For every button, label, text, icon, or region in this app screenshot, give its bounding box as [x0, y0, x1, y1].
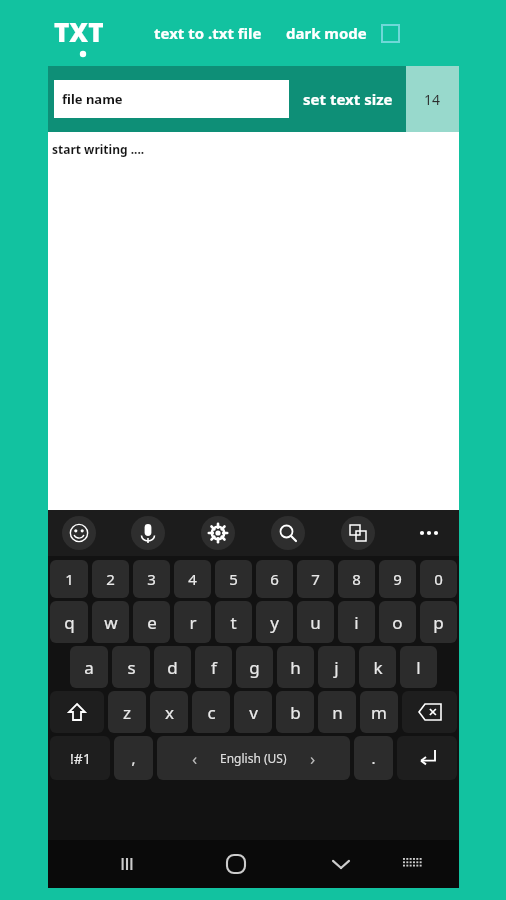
- button[interactable]: n: [318, 691, 356, 733]
- button[interactable]: e: [133, 601, 170, 643]
- button[interactable]: w: [92, 601, 129, 643]
- button[interactable]: Emoji: [62, 516, 96, 550]
- button[interactable]: r: [174, 601, 211, 643]
- staticText: h: [290, 656, 301, 679]
- staticText: r: [189, 611, 197, 634]
- staticText: 1: [65, 569, 74, 589]
- staticText: a: [84, 656, 94, 679]
- staticText: 5: [229, 569, 238, 589]
- staticText: 6: [270, 569, 279, 589]
- button[interactable]: h: [277, 646, 314, 688]
- button[interactable]: 6: [256, 560, 293, 598]
- button[interactable]: Recents: [105, 842, 149, 886]
- staticText: dark mode: [286, 23, 367, 43]
- staticText: n: [332, 701, 343, 724]
- button[interactable]: 4: [174, 560, 211, 598]
- button[interactable]: g: [236, 646, 273, 688]
- staticText: y: [270, 611, 279, 634]
- button[interactable]: j: [318, 646, 355, 688]
- staticText: set text size: [303, 89, 393, 109]
- button[interactable]: More options: [411, 515, 447, 551]
- staticText: !#1: [70, 749, 91, 768]
- button[interactable]: Enter: [397, 736, 457, 780]
- staticText: d: [167, 656, 178, 679]
- button[interactable]: Backspace: [402, 691, 457, 733]
- staticText: m: [371, 701, 387, 724]
- staticText: b: [290, 701, 301, 724]
- staticText: e: [147, 611, 157, 634]
- button[interactable]: Shift: [50, 691, 104, 733]
- button[interactable]: set text size: [289, 66, 406, 132]
- button[interactable]: text to .txt file: [152, 21, 264, 45]
- button[interactable]: x: [150, 691, 188, 733]
- button[interactable]: ,: [114, 736, 153, 780]
- button[interactable]: Search: [271, 516, 305, 550]
- staticText: 7: [311, 569, 320, 589]
- button[interactable]: v: [234, 691, 272, 733]
- button[interactable]: t: [215, 601, 252, 643]
- button[interactable]: p: [420, 601, 457, 643]
- staticText: x: [165, 701, 174, 724]
- button[interactable]: b: [276, 691, 314, 733]
- button[interactable]: Translate: [341, 516, 375, 550]
- staticText: 14: [424, 90, 441, 109]
- button[interactable]: 0: [420, 560, 457, 598]
- button[interactable]: y: [256, 601, 293, 643]
- staticText: 3: [147, 569, 156, 589]
- staticText: f: [211, 656, 217, 679]
- button[interactable]: 2: [92, 560, 129, 598]
- button[interactable]: dark mode: [284, 21, 402, 45]
- button[interactable]: 7: [297, 560, 334, 598]
- staticText: start writing ....: [52, 141, 145, 157]
- staticText: text to .txt file: [154, 23, 262, 43]
- staticText: ›: [310, 747, 316, 770]
- button[interactable]: Settings: [201, 516, 235, 550]
- button[interactable]: f: [195, 646, 232, 688]
- staticText: p: [433, 611, 444, 634]
- button[interactable]: 9: [379, 560, 416, 598]
- button[interactable]: Keyboard layout: [393, 844, 433, 884]
- button[interactable]: q: [50, 601, 88, 643]
- staticText: t: [230, 611, 237, 634]
- button[interactable]: 14: [406, 66, 459, 132]
- staticText: TXT: [54, 14, 104, 49]
- staticText: ‹: [192, 747, 198, 770]
- staticText: file name: [62, 90, 123, 108]
- staticText: ,: [131, 748, 136, 768]
- staticText: u: [310, 611, 321, 634]
- button[interactable]: d: [154, 646, 191, 688]
- staticText: 4: [188, 569, 197, 589]
- button[interactable]: Voice input: [131, 516, 165, 550]
- staticText: 2: [106, 569, 115, 589]
- staticText: j: [334, 656, 339, 679]
- button[interactable]: 1: [50, 560, 88, 598]
- button[interactable]: .: [354, 736, 393, 780]
- button[interactable]: a: [70, 646, 108, 688]
- button[interactable]: !#1: [50, 736, 110, 780]
- staticText: o: [392, 611, 403, 634]
- staticText: g: [249, 656, 260, 679]
- button[interactable]: Home: [214, 842, 258, 886]
- staticText: l: [416, 656, 421, 679]
- button[interactable]: s: [112, 646, 150, 688]
- button[interactable]: z: [108, 691, 146, 733]
- button[interactable]: k: [359, 646, 396, 688]
- staticText: w: [104, 611, 118, 634]
- button[interactable]: file name: [54, 80, 289, 118]
- button[interactable]: Hide keyboard: [319, 842, 363, 886]
- button[interactable]: u: [297, 601, 334, 643]
- button[interactable]: c: [192, 691, 230, 733]
- staticText: 9: [393, 569, 402, 589]
- button[interactable]: l: [400, 646, 437, 688]
- staticText: s: [127, 656, 136, 679]
- button[interactable]: o: [379, 601, 416, 643]
- button[interactable]: m: [360, 691, 398, 733]
- button[interactable]: 8: [338, 560, 375, 598]
- staticText: 8: [352, 569, 361, 589]
- button[interactable]: i: [338, 601, 375, 643]
- button[interactable]: Space, English (US): [157, 736, 350, 780]
- staticText: k: [373, 656, 383, 679]
- staticText: q: [64, 611, 75, 634]
- button[interactable]: 3: [133, 560, 170, 598]
- button[interactable]: 5: [215, 560, 252, 598]
